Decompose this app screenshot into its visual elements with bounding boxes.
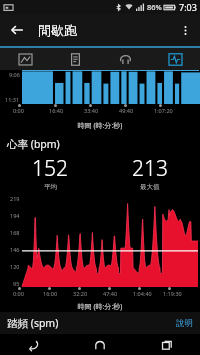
staticText: 0:00 bbox=[13, 290, 24, 297]
staticText: 49:40 bbox=[119, 107, 134, 114]
button[interactable]: 踏頻 (spm) bbox=[0, 312, 200, 334]
staticText: 間歇跑 bbox=[38, 22, 77, 38]
staticText: 47:40 bbox=[103, 290, 118, 297]
staticText: 146 bbox=[10, 246, 20, 253]
staticText: 32:20 bbox=[73, 290, 88, 297]
staticText: 心率 (bpm) bbox=[7, 137, 60, 151]
staticText: 1:04:40 bbox=[133, 290, 152, 297]
button[interactable]: Recents bbox=[133, 334, 200, 355]
staticText: 194 bbox=[10, 212, 20, 219]
staticText: 11:31 bbox=[5, 96, 20, 103]
button[interactable]: Charts bbox=[150, 48, 200, 70]
staticText: 平均 bbox=[44, 183, 57, 191]
staticText: 最大值 bbox=[140, 183, 160, 191]
staticText: 16:00 bbox=[43, 290, 58, 297]
staticText: 168 bbox=[10, 229, 20, 236]
staticText: 9:06 bbox=[9, 71, 20, 78]
button[interactable]: Back bbox=[0, 334, 66, 355]
staticText: 7:03 bbox=[179, 1, 197, 13]
staticText: 1:19:30 bbox=[163, 290, 182, 297]
staticText: 1:07:20 bbox=[154, 107, 173, 114]
staticText: 說明 bbox=[176, 318, 193, 329]
staticText: 時間 (時:分:秒) bbox=[0, 121, 200, 131]
staticText: 16:40 bbox=[49, 107, 64, 114]
staticText: 0:00 bbox=[13, 107, 24, 114]
staticText: 95 bbox=[13, 280, 20, 287]
button[interactable]: More options bbox=[172, 17, 198, 43]
staticText: 時間 (時:分:秒) bbox=[0, 302, 200, 312]
staticText: 219 bbox=[10, 195, 20, 202]
button[interactable]: Home bbox=[66, 334, 133, 355]
staticText: 120 bbox=[10, 263, 20, 270]
button[interactable]: Back bbox=[4, 17, 30, 43]
button[interactable]: Details bbox=[50, 48, 100, 70]
staticText: 213 bbox=[132, 154, 168, 183]
button[interactable]: Laps bbox=[100, 48, 150, 70]
staticText: 152 bbox=[32, 154, 68, 183]
staticText: 踏頻 (spm) bbox=[7, 316, 59, 330]
staticText: 33:40 bbox=[84, 107, 99, 114]
button[interactable]: Map bbox=[0, 48, 50, 70]
staticText: 86% bbox=[147, 2, 162, 12]
